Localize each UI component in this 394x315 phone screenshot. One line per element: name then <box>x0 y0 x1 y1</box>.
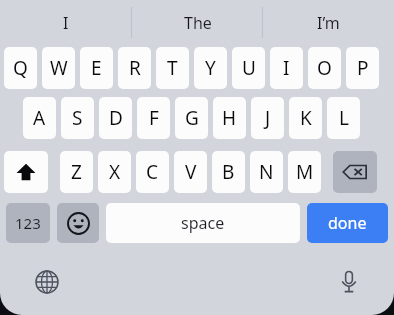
button[interactable]: 123 <box>6 203 50 243</box>
button[interactable]: S <box>61 97 94 139</box>
button[interactable]: N <box>250 151 283 193</box>
staticText: R <box>129 55 141 81</box>
staticText: Y <box>205 55 216 81</box>
staticText: Z <box>71 159 82 185</box>
staticText: C <box>146 159 159 185</box>
staticText: A <box>33 105 46 131</box>
button[interactable]: done <box>307 203 388 243</box>
button[interactable]: O <box>308 47 341 89</box>
button[interactable]: Z <box>60 151 93 193</box>
button[interactable]: space <box>106 203 300 243</box>
staticText: L <box>339 105 349 131</box>
button[interactable]: D <box>99 97 132 139</box>
button[interactable]: W <box>42 47 75 89</box>
button[interactable]: A <box>23 97 56 139</box>
button[interactable]: R <box>118 47 151 89</box>
button[interactable]: L <box>327 97 360 139</box>
button[interactable]: B <box>212 151 245 193</box>
button[interactable]: K <box>289 97 322 139</box>
button[interactable]: E <box>80 47 113 89</box>
button[interactable]: H <box>213 97 246 139</box>
staticText: O <box>317 55 332 81</box>
button[interactable]: G <box>175 97 208 139</box>
button[interactable]: J <box>251 97 284 139</box>
button[interactable]: Dictation <box>332 265 366 299</box>
button[interactable]: M <box>288 151 321 193</box>
button[interactable]: Y <box>194 47 227 89</box>
staticText: done <box>328 212 367 234</box>
staticText: The <box>184 12 212 34</box>
staticText: K <box>300 105 312 131</box>
button[interactable]: I <box>0 0 132 45</box>
button[interactable]: I’m <box>263 0 394 45</box>
staticText: G <box>185 105 199 131</box>
staticText: space <box>181 212 225 234</box>
staticText: I’m <box>317 12 340 34</box>
button[interactable]: P <box>346 47 379 89</box>
staticText: S <box>72 105 83 131</box>
staticText: I <box>283 55 290 81</box>
staticText: H <box>222 105 237 131</box>
staticText: W <box>50 55 68 81</box>
staticText: U <box>242 55 256 81</box>
button[interactable]: Shift <box>4 151 48 193</box>
staticText: V <box>185 159 197 185</box>
staticText: T <box>167 55 178 81</box>
button[interactable]: The <box>132 0 263 45</box>
staticText: M <box>296 159 314 185</box>
button[interactable]: U <box>232 47 265 89</box>
staticText: P <box>357 55 369 81</box>
button[interactable]: F <box>137 97 170 139</box>
staticText: N <box>259 159 274 185</box>
button[interactable]: Backspace <box>333 151 377 193</box>
button[interactable]: I <box>270 47 303 89</box>
button[interactable]: C <box>136 151 169 193</box>
staticText: F <box>149 105 159 131</box>
staticText: 123 <box>15 213 41 233</box>
button[interactable]: X <box>98 151 131 193</box>
button[interactable]: T <box>156 47 189 89</box>
button[interactable]: Q <box>4 47 37 89</box>
staticText: J <box>265 105 271 131</box>
staticText: X <box>109 159 121 185</box>
button[interactable]: Emoji <box>57 203 99 243</box>
staticText: I <box>63 12 69 34</box>
button[interactable]: Change keyboard <box>30 265 64 299</box>
staticText: B <box>222 159 235 185</box>
staticText: D <box>109 105 123 131</box>
staticText: Q <box>13 55 28 81</box>
button[interactable]: V <box>174 151 207 193</box>
staticText: E <box>91 55 102 81</box>
